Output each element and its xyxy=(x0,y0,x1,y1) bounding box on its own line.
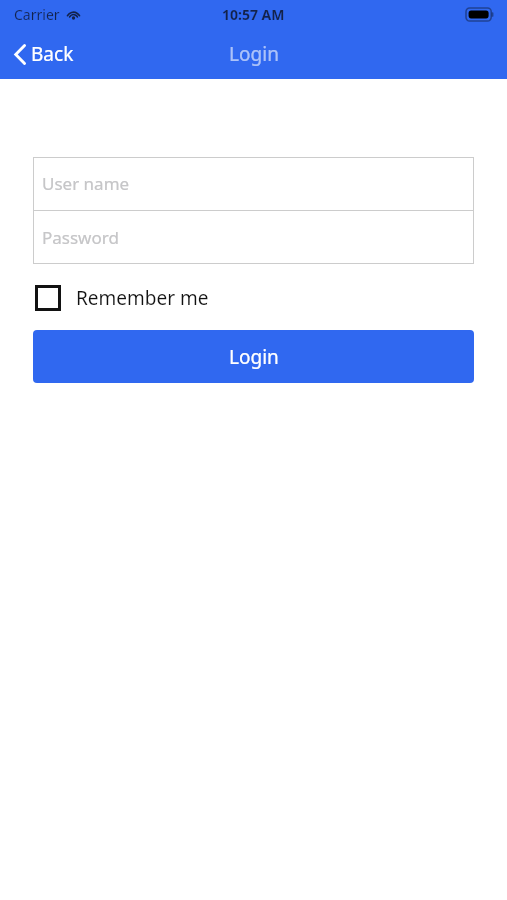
staticText: Remember me xyxy=(76,285,209,311)
staticText: Login xyxy=(229,344,279,370)
staticText: Back xyxy=(31,41,74,67)
staticText: Login xyxy=(229,41,279,67)
staticText: Carrier xyxy=(14,5,60,24)
staticText: 10:57 AM xyxy=(222,5,285,24)
button[interactable]: Password xyxy=(33,211,474,264)
button[interactable]: Login xyxy=(33,330,474,383)
staticText: Password xyxy=(42,226,119,249)
staticText: User name xyxy=(42,172,130,195)
button[interactable]: Remember me xyxy=(33,281,211,315)
button[interactable]: User name xyxy=(33,157,474,210)
button[interactable]: Back xyxy=(0,35,86,73)
other: Back xyxy=(14,44,26,65)
